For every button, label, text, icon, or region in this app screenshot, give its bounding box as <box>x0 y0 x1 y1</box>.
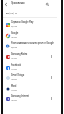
button[interactable]: More options <box>50 55 52 58</box>
button[interactable]: Сервисы Google Play <box>3 19 57 30</box>
staticText: Распознавание и синтез речи от Google <box>11 42 54 45</box>
staticText: Все (119) <box>6 12 14 14</box>
staticText: Facebook <box>11 64 21 67</box>
staticText: SmartThings <box>11 74 25 77</box>
staticText: 147 МБ <box>11 68 17 70</box>
button[interactable]: Back <box>3 0 9 9</box>
staticText: Samsung Internet <box>11 95 30 98</box>
staticText: Samsung Notes <box>11 53 28 56</box>
staticText: 119 МБ <box>11 89 17 91</box>
button[interactable]: More options <box>50 97 52 100</box>
staticText: Google <box>11 32 19 35</box>
staticText: Приложения <box>11 2 25 5</box>
staticText: Word <box>11 85 17 88</box>
staticText: 59,1 МБ <box>11 25 18 27</box>
staticText: Сервисы Google Play <box>11 21 34 24</box>
button[interactable]: Все (119) <box>3 10 17 16</box>
button[interactable]: Samsung Internet <box>3 93 57 104</box>
button[interactable]: Google <box>3 30 57 41</box>
button[interactable]: Распознавание и синтез речи от Google <box>3 40 57 51</box>
staticText: 184 МБ <box>11 36 17 38</box>
button[interactable]: Word <box>3 83 57 94</box>
staticText: 55,9 МБ <box>11 46 18 48</box>
staticText: 128 МБ <box>11 78 17 80</box>
staticText: 191 МБ <box>11 57 17 59</box>
button[interactable]: SmartThings <box>3 72 57 83</box>
button[interactable]: More options <box>50 76 52 79</box>
button[interactable]: Samsung Notes <box>3 51 57 62</box>
button[interactable]: Search <box>44 0 50 9</box>
button[interactable]: Facebook <box>3 62 57 73</box>
staticText: 107 МБ <box>11 99 17 101</box>
